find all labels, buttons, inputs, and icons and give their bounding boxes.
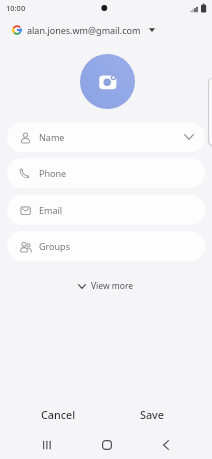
staticText: Email — [39, 204, 63, 216]
staticText: Phone — [39, 167, 67, 179]
button[interactable]: Save — [112, 404, 192, 424]
staticText: 10:00 — [6, 3, 26, 13]
button[interactable]: Cancel — [18, 404, 98, 424]
staticText: Save — [140, 407, 165, 422]
button[interactable]: Groups — [7, 231, 205, 261]
button[interactable]: Phone — [7, 158, 205, 188]
button[interactable] — [80, 54, 135, 109]
button[interactable] — [33, 433, 61, 457]
staticText: Name — [39, 131, 65, 143]
button[interactable] — [152, 433, 180, 457]
button[interactable]: Email — [7, 195, 205, 225]
button[interactable]: alan.jones.wm@gmail.com — [12, 21, 155, 38]
staticText: Groups — [39, 240, 70, 252]
staticText: alan.jones.wm@gmail.com — [27, 24, 141, 36]
button[interactable]: View more — [0, 278, 212, 294]
staticText: Cancel — [41, 407, 76, 422]
staticText: View more — [91, 280, 134, 292]
button[interactable] — [93, 433, 121, 457]
button[interactable]: Name — [7, 122, 205, 152]
